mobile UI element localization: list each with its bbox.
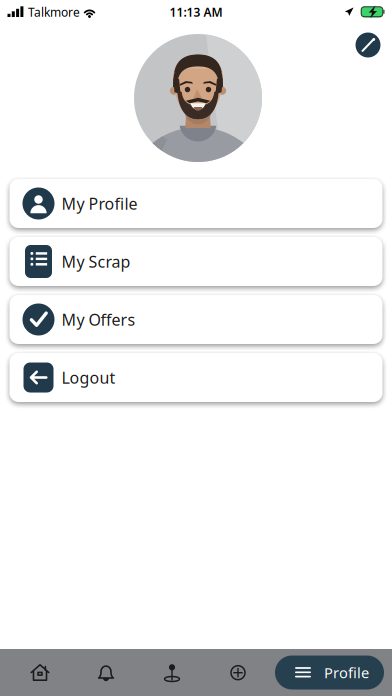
staticText: Logout <box>61 367 115 388</box>
staticText: My Scrap <box>61 251 130 272</box>
staticText: 11:13 AM <box>169 4 222 20</box>
staticText: My Offers <box>61 309 135 330</box>
button[interactable]: Profile <box>275 655 384 689</box>
staticText: My Profile <box>61 193 137 214</box>
staticText: Talkmore <box>28 4 80 20</box>
button[interactable]: My Scrap <box>9 237 382 286</box>
button[interactable]: Logout <box>9 353 382 402</box>
button[interactable]: My Profile <box>9 179 382 228</box>
button[interactable]: Notifications <box>73 649 139 696</box>
button[interactable]: Home <box>7 649 73 696</box>
staticText: Profile <box>324 663 369 682</box>
button[interactable]: Add <box>205 649 271 696</box>
button[interactable]: Map <box>139 649 205 696</box>
button[interactable]: My Offers <box>9 295 382 344</box>
button[interactable]: Edit profile <box>348 25 388 65</box>
